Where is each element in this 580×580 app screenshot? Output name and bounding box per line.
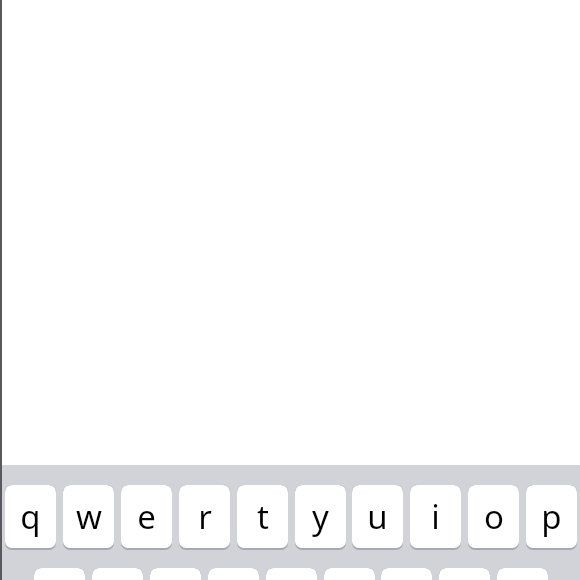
button[interactable]: u [352, 485, 403, 550]
staticText: e [137, 494, 156, 539]
staticText: u [367, 494, 388, 539]
staticText: i [431, 494, 440, 539]
button[interactable]: i [410, 485, 461, 550]
button[interactable]: t [237, 485, 288, 550]
button[interactable]: e [121, 485, 172, 550]
button[interactable]: s [92, 568, 143, 580]
button[interactable]: f [208, 568, 259, 580]
button[interactable]: h [324, 568, 375, 580]
button[interactable]: l [497, 568, 548, 580]
staticText: r [198, 494, 212, 539]
button[interactable]: p [526, 485, 577, 550]
staticText: w [76, 494, 102, 539]
button[interactable]: o [468, 485, 519, 550]
staticText: y [312, 494, 329, 539]
staticText: o [484, 494, 504, 539]
button[interactable]: r [179, 485, 230, 550]
button[interactable]: d [150, 568, 201, 580]
staticText: t [257, 494, 269, 539]
button[interactable]: w [63, 485, 114, 550]
button[interactable]: a [34, 568, 85, 580]
button[interactable]: q [5, 485, 56, 550]
button[interactable]: j [381, 568, 432, 580]
button[interactable]: k [439, 568, 490, 580]
button[interactable]: y [295, 485, 346, 550]
button[interactable]: g [266, 568, 317, 580]
staticText: q [20, 494, 41, 539]
staticText: p [541, 494, 562, 539]
